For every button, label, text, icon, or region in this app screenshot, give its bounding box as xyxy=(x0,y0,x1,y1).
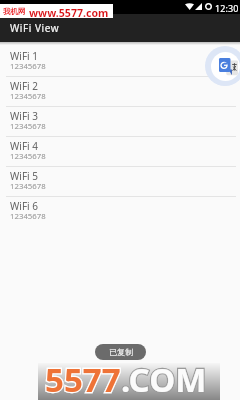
staticText: 12345678 xyxy=(10,91,46,102)
staticText: WiFi View xyxy=(10,21,60,35)
staticText: WiFi 4 xyxy=(10,139,38,153)
button[interactable]: WiFi 5 xyxy=(0,167,240,197)
staticText: 12345678 xyxy=(10,181,46,192)
staticText: 12345678 xyxy=(10,211,46,222)
staticText: .COM xyxy=(121,357,207,394)
button[interactable]: WiFi 2 xyxy=(0,77,240,107)
button[interactable]: WiFi 1 xyxy=(0,47,240,77)
staticText: 5577 xyxy=(45,357,121,394)
staticText: 5577 xyxy=(45,357,121,394)
button[interactable]: Translate xyxy=(205,46,240,86)
staticText: www.5577.com xyxy=(29,6,109,20)
staticText: 我机网 xyxy=(3,7,26,16)
staticText: WiFi 2 xyxy=(10,79,38,93)
staticText: WiFi 1 xyxy=(10,49,38,63)
button[interactable]: WiFi 6 xyxy=(0,197,240,227)
staticText: 12345678 xyxy=(10,61,46,72)
staticText: 12:30 xyxy=(215,2,239,14)
button[interactable]: WiFi View xyxy=(0,14,240,42)
staticText: 12345678 xyxy=(10,151,46,162)
staticText: .COM xyxy=(121,357,207,394)
button[interactable]: 已复制 xyxy=(95,344,146,360)
staticText: WiFi 5 xyxy=(10,169,38,183)
staticText: WiFi 6 xyxy=(10,199,38,213)
staticText: WiFi 3 xyxy=(10,109,38,123)
button[interactable]: WiFi 4 xyxy=(0,137,240,167)
staticText: 12345678 xyxy=(10,121,46,132)
staticText: 已复制 xyxy=(109,347,133,357)
button[interactable]: WiFi 3 xyxy=(0,107,240,137)
